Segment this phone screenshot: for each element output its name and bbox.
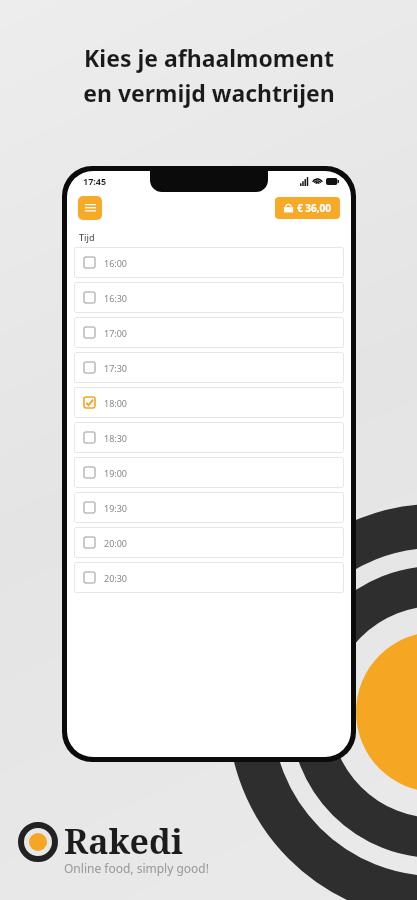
button[interactable]: 20:30 <box>74 562 344 593</box>
staticText: 18:30 <box>104 432 128 444</box>
staticText: 20:30 <box>104 572 128 584</box>
staticText: 17:00 <box>104 327 128 339</box>
staticText: 17:45 <box>83 175 107 187</box>
button[interactable]: 20:00 <box>74 527 344 558</box>
staticText: 16:00 <box>104 257 128 269</box>
button[interactable]: € 36,00 <box>275 197 340 219</box>
staticText: 19:30 <box>104 502 128 514</box>
button[interactable]: 16:00 <box>74 247 344 278</box>
staticText: 19:00 <box>104 467 128 479</box>
staticText: Tijd <box>79 231 95 243</box>
staticText: Kies je afhaalmoment <box>84 42 334 73</box>
staticText: 17:30 <box>104 362 128 374</box>
button[interactable]: 18:30 <box>74 422 344 453</box>
button[interactable]: 19:30 <box>74 492 344 523</box>
button[interactable]: 18:00 <box>74 387 344 418</box>
button[interactable]: Menu <box>78 196 102 220</box>
staticText: € 36,00 <box>297 201 332 215</box>
button[interactable]: 16:30 <box>74 282 344 313</box>
button[interactable]: 17:30 <box>74 352 344 383</box>
staticText: en vermijd wachtrijen <box>83 77 335 108</box>
staticText: 16:30 <box>104 292 128 304</box>
staticText: 18:00 <box>104 397 128 409</box>
staticText: Rakedi <box>64 818 184 864</box>
button[interactable]: 19:00 <box>74 457 344 488</box>
staticText: Online food, simply good! <box>64 860 209 876</box>
staticText: 20:00 <box>104 537 128 549</box>
button[interactable]: 17:00 <box>74 317 344 348</box>
